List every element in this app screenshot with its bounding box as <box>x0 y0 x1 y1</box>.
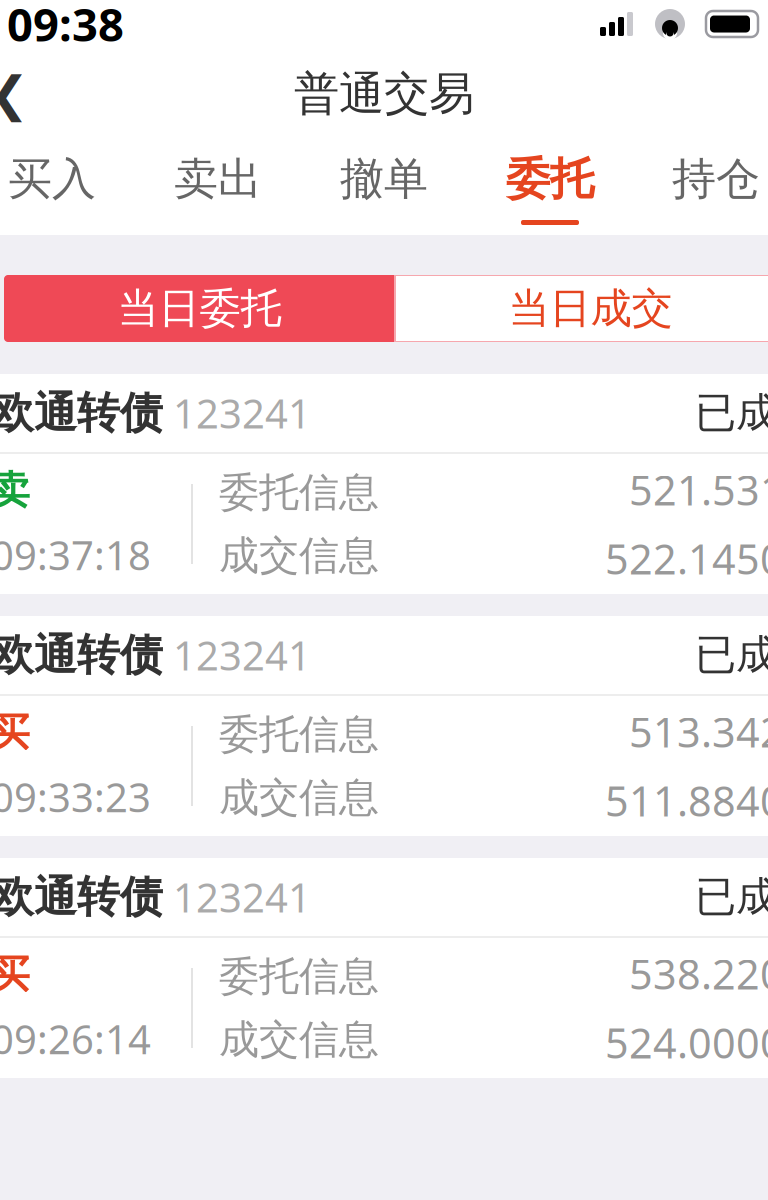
button[interactable]: 买入 <box>0 140 135 235</box>
button[interactable]: Back <box>0 58 49 130</box>
staticText: 538.220/ <box>629 946 768 1001</box>
button[interactable]: 撤单 <box>301 140 467 235</box>
staticText: 普通交易 <box>294 66 474 122</box>
staticText: 欧通转债 <box>0 629 163 681</box>
staticText: 委托 <box>506 152 594 206</box>
staticText: 已成 <box>695 388 768 438</box>
button[interactable]: 持仓 <box>633 140 768 235</box>
staticText: 511.8840/ <box>605 773 768 828</box>
staticText: 撤单 <box>340 152 428 206</box>
staticText: 521.531/ <box>629 462 768 517</box>
staticText: 524.0000/ <box>605 1015 768 1070</box>
staticText: 09:37:18 <box>0 528 151 581</box>
staticText: 成交信息 <box>219 773 379 822</box>
staticText: 09:26:14 <box>0 1012 151 1065</box>
staticText: 已成 <box>695 872 768 922</box>
staticText: 09:38 <box>7 0 124 54</box>
button[interactable]: 欧通转债 <box>0 858 768 1078</box>
staticText: 成交信息 <box>219 531 379 580</box>
staticText: 欧通转债 <box>0 871 163 923</box>
button[interactable]: 欧通转债 <box>0 374 768 594</box>
button[interactable]: 当日成交 <box>395 275 768 342</box>
staticText: 已成 <box>695 630 768 680</box>
staticText: 买入 <box>8 152 96 206</box>
button[interactable]: 当日委托 <box>4 275 395 342</box>
staticText: 513.342/ <box>629 704 768 759</box>
staticText: 买 <box>0 951 30 998</box>
button[interactable]: 委托 <box>467 140 633 235</box>
staticText: 卖 <box>0 467 30 514</box>
staticText: 成交信息 <box>219 1015 379 1064</box>
staticText: 买 <box>0 709 30 756</box>
button[interactable]: 卖出 <box>135 140 301 235</box>
button[interactable]: 欧通转债 <box>0 616 768 836</box>
staticText: 当日委托 <box>117 283 281 334</box>
staticText: 123241 <box>163 628 311 681</box>
staticText: 当日成交 <box>508 283 672 334</box>
staticText: 123241 <box>163 386 311 439</box>
staticText: 522.1450/ <box>605 531 768 586</box>
staticText: 委托信息 <box>219 468 379 517</box>
staticText: 委托信息 <box>219 710 379 759</box>
staticText: 委托信息 <box>219 952 379 1001</box>
staticText: 123241 <box>163 870 311 923</box>
staticText: 09:33:23 <box>0 770 151 823</box>
staticText: 持仓 <box>672 152 760 206</box>
staticText: 欧通转债 <box>0 387 163 439</box>
staticText: 卖出 <box>174 152 262 206</box>
staticText: ❮ <box>0 67 29 121</box>
